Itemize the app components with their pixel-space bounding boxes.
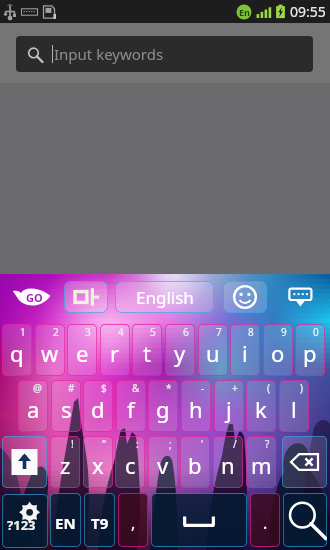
staticText: d <box>91 394 105 424</box>
staticText: h <box>189 394 203 424</box>
staticText: ? <box>265 437 270 451</box>
staticText: 7 <box>216 325 222 339</box>
button[interactable]: # <box>51 380 81 432</box>
button[interactable]: Switch keyboard layout <box>64 281 108 313</box>
button[interactable]: Hide keyboard <box>281 282 319 312</box>
staticText: t <box>143 338 151 368</box>
button[interactable]: & <box>116 380 146 432</box>
staticText: i <box>242 338 248 368</box>
staticText: r <box>110 338 120 368</box>
button[interactable]: ' <box>180 436 210 488</box>
staticText: Input keywords <box>54 44 164 64</box>
button[interactable]: @ <box>18 380 48 432</box>
button[interactable]: * <box>148 380 178 432</box>
staticText: " <box>102 437 107 451</box>
staticText: w <box>41 338 59 368</box>
button[interactable]: Search <box>283 493 327 547</box>
staticText: n <box>221 450 235 480</box>
staticText: v <box>157 450 169 480</box>
button[interactable]: T9 <box>84 493 115 547</box>
button[interactable]: . <box>250 493 280 547</box>
staticText: g <box>156 394 170 424</box>
staticText: $ <box>101 381 107 395</box>
staticText: ) <box>300 381 303 395</box>
staticText: 5 <box>150 325 156 339</box>
staticText: 1 <box>20 325 26 339</box>
staticText: a <box>27 394 40 424</box>
button[interactable]: $ <box>83 380 113 432</box>
button[interactable]: 2 <box>35 324 65 376</box>
button[interactable]: ; <box>148 436 178 488</box>
button[interactable]: Backspace <box>282 436 327 488</box>
button[interactable]: 8 <box>230 324 260 376</box>
button[interactable]: Emoji <box>223 281 267 313</box>
staticText: + <box>232 381 238 395</box>
button[interactable]: 6 <box>165 324 195 376</box>
staticText: l <box>291 394 297 424</box>
button[interactable]: ( <box>246 380 276 432</box>
button[interactable]: ) <box>279 380 309 432</box>
staticText: / <box>233 437 237 451</box>
button[interactable]: English <box>115 281 214 313</box>
button[interactable]: / <box>213 436 243 488</box>
staticText: 0 <box>313 325 319 339</box>
staticText: T9 <box>91 513 109 533</box>
staticText: EN <box>55 513 76 533</box>
staticText: # <box>68 381 75 395</box>
staticText: ' <box>201 437 204 451</box>
button[interactable]: : <box>115 436 145 488</box>
button[interactable]: Input keywords <box>16 36 313 72</box>
staticText: En <box>239 6 250 18</box>
button[interactable]: 1 <box>2 324 32 376</box>
staticText: 8 <box>248 325 254 339</box>
staticText: * <box>166 381 172 395</box>
staticText: & <box>132 381 140 395</box>
staticText: English <box>136 286 194 309</box>
button[interactable]: 9 <box>263 324 293 376</box>
staticText: ?123 <box>7 516 36 534</box>
staticText: GO <box>26 290 43 305</box>
staticText: u <box>206 338 220 368</box>
staticText: - <box>201 381 205 395</box>
button[interactable]: 7 <box>198 324 228 376</box>
staticText: x <box>92 450 104 480</box>
staticText: ( <box>267 381 270 395</box>
button[interactable]: Symbols and settings <box>2 494 48 548</box>
button[interactable]: EN <box>50 493 81 547</box>
staticText: 3 <box>85 325 91 339</box>
staticText: z <box>60 450 71 480</box>
button[interactable]: 5 <box>132 324 162 376</box>
button[interactable]: Space <box>151 493 247 547</box>
button[interactable]: GO Keyboard menu <box>12 283 52 310</box>
button[interactable]: 3 <box>67 324 97 376</box>
staticText: k <box>255 394 267 424</box>
button[interactable]: + <box>214 380 244 432</box>
staticText: f <box>127 394 135 424</box>
staticText: s <box>61 394 72 424</box>
staticText: ! <box>71 437 74 451</box>
staticText: ; <box>169 437 172 451</box>
button[interactable]: ! <box>50 436 80 488</box>
staticText: 4 <box>118 325 124 339</box>
staticText: p <box>303 338 317 368</box>
staticText: j <box>226 394 232 424</box>
staticText: . <box>263 512 268 534</box>
button[interactable] <box>2 436 47 488</box>
staticText: e <box>76 338 89 368</box>
staticText: c <box>125 450 136 480</box>
staticText: , <box>131 512 136 534</box>
button[interactable]: " <box>83 436 113 488</box>
button[interactable]: 0 <box>295 324 325 376</box>
staticText: q <box>10 338 24 368</box>
staticText: m <box>251 450 272 480</box>
staticText: 09:55 <box>290 2 326 21</box>
staticText: 9 <box>281 325 287 339</box>
staticText: b <box>188 450 202 480</box>
button[interactable]: - <box>181 380 211 432</box>
staticText: 6 <box>183 325 189 339</box>
staticText: @ <box>33 381 42 395</box>
button[interactable]: , <box>118 493 148 547</box>
button[interactable]: ? <box>246 436 276 488</box>
button[interactable]: 4 <box>100 324 130 376</box>
staticText: y <box>174 338 186 368</box>
